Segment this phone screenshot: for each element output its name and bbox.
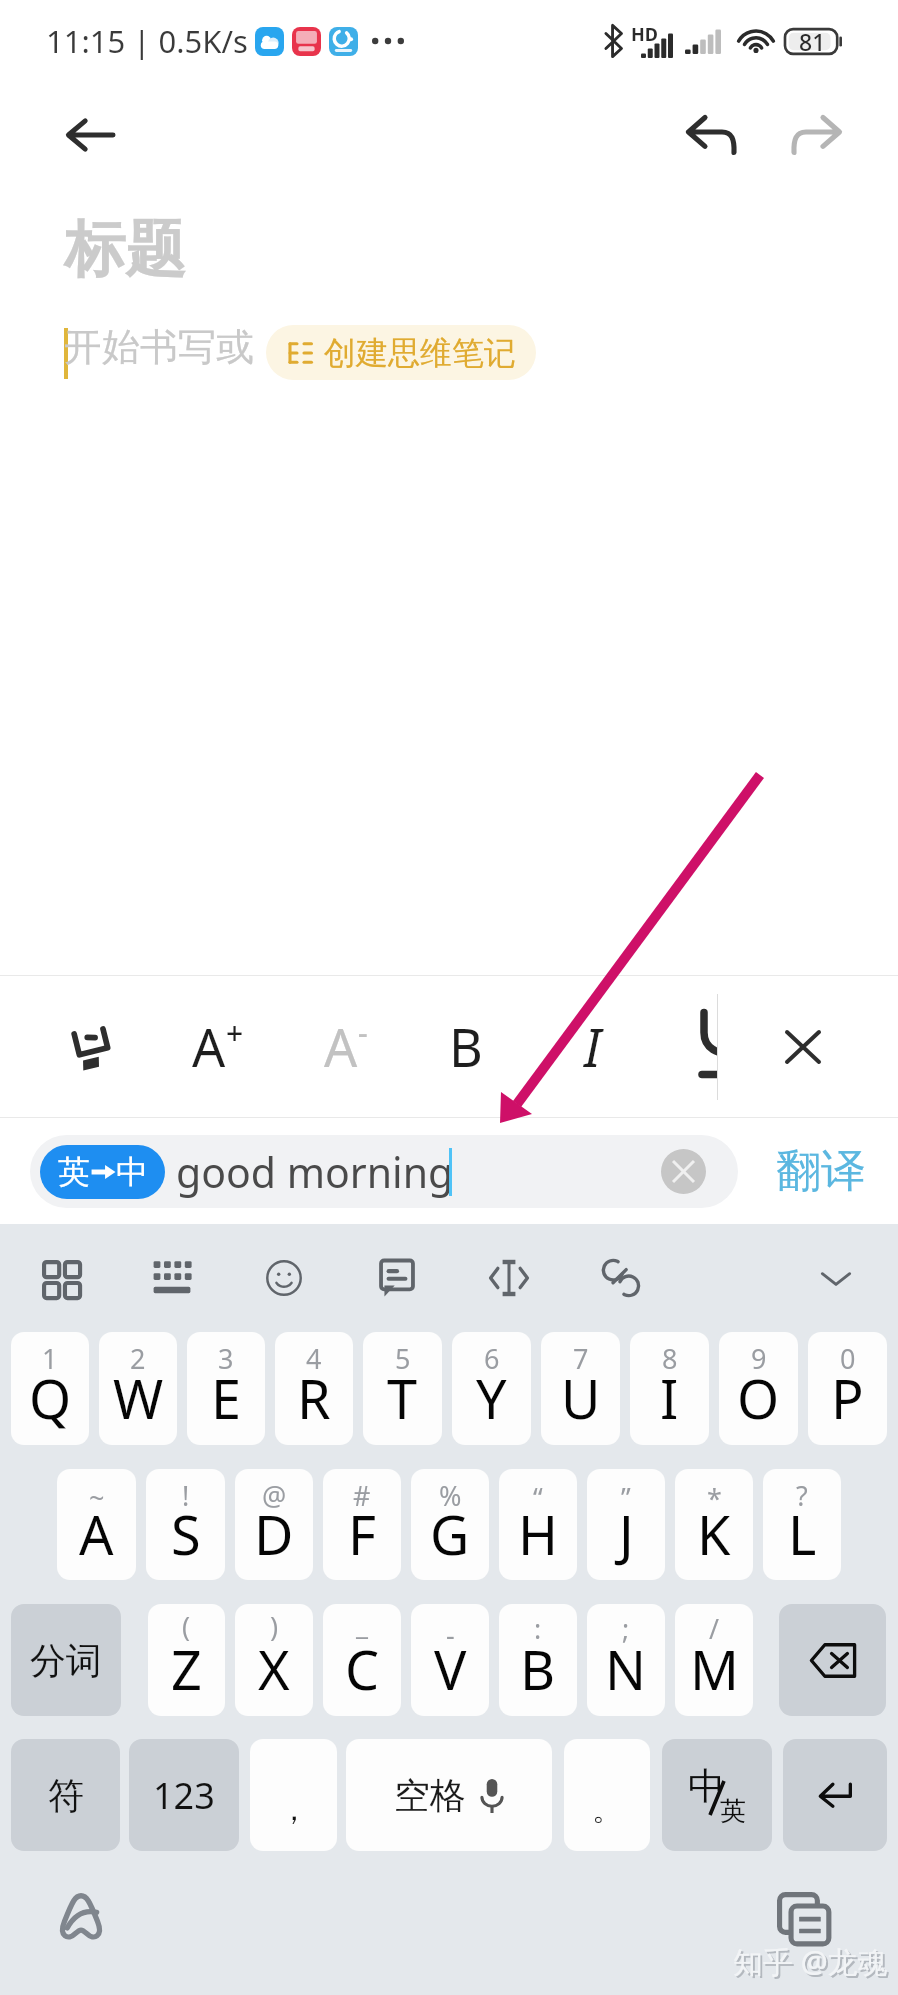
button[interactable]: 符 <box>11 1739 120 1851</box>
staticText: 5 <box>395 1340 411 1377</box>
button[interactable]: 7 <box>541 1332 620 1445</box>
button[interactable]: ? <box>763 1469 841 1580</box>
button[interactable]: 翻译 <box>764 1132 878 1210</box>
button[interactable]: 6 <box>452 1332 531 1445</box>
button[interactable]: Hide keyboard <box>798 1224 874 1332</box>
button[interactable]: Clipboard <box>583 1224 659 1332</box>
button[interactable]: Enter <box>783 1739 887 1851</box>
staticText: M <box>690 1632 739 1706</box>
button[interactable]: Switch Chinese English input <box>662 1739 772 1851</box>
button[interactable]: Move cursor <box>471 1224 547 1332</box>
button[interactable]: Close <box>758 976 848 1117</box>
button[interactable]: * <box>675 1469 753 1580</box>
staticText: 0 <box>840 1340 856 1377</box>
button[interactable]: 9 <box>719 1332 798 1445</box>
button[interactable]: Undo <box>666 90 756 180</box>
button[interactable]: More functions <box>22 1224 98 1332</box>
button[interactable]: _ <box>323 1604 401 1716</box>
button[interactable]: Italic <box>547 976 637 1117</box>
staticText: % <box>439 1477 462 1514</box>
staticText: X <box>258 1632 290 1706</box>
button[interactable]: : <box>499 1604 577 1716</box>
button[interactable]: 0 <box>808 1332 887 1445</box>
staticText: 。 <box>592 1791 622 1829</box>
button[interactable]: 创建思维笔记 <box>266 325 536 380</box>
button[interactable]: / <box>675 1604 753 1716</box>
staticText: - <box>358 1012 368 1053</box>
staticText: H <box>518 1497 559 1571</box>
button[interactable]: - <box>411 1604 489 1716</box>
staticText: good morning <box>176 1144 454 1200</box>
button[interactable]: “ <box>499 1469 577 1580</box>
staticText: C <box>345 1632 380 1706</box>
button[interactable]: % <box>411 1469 489 1580</box>
button[interactable]: 。 <box>564 1739 650 1851</box>
button[interactable]: Saved phrases <box>359 1224 435 1332</box>
staticText: ? <box>796 1477 808 1514</box>
staticText: ( <box>182 1608 191 1645</box>
staticText: W <box>113 1361 164 1435</box>
button[interactable]: @ <box>235 1469 313 1580</box>
button[interactable]: Bold <box>421 976 511 1117</box>
staticText: 3 <box>218 1340 234 1377</box>
staticText: ! <box>182 1477 190 1514</box>
staticText: T <box>387 1361 418 1435</box>
button[interactable]: Emoji <box>246 1224 322 1332</box>
button[interactable]: 1 <box>11 1332 89 1445</box>
button[interactable]: # <box>323 1469 401 1580</box>
button[interactable]: Clipboard history <box>774 1889 834 1949</box>
staticText: O <box>737 1361 780 1435</box>
staticText: 2 <box>130 1340 146 1377</box>
button[interactable]: ; <box>587 1604 665 1716</box>
staticText: 4 <box>306 1340 322 1377</box>
staticText: 分词 <box>30 1638 102 1683</box>
staticText: _ <box>356 1606 368 1643</box>
staticText: F <box>348 1497 377 1571</box>
button[interactable]: 5 <box>363 1332 442 1445</box>
staticText: ， <box>279 1791 309 1829</box>
button[interactable]: ” <box>587 1469 665 1580</box>
staticText: “ <box>533 1479 543 1516</box>
button[interactable]: Increase font size <box>173 976 263 1117</box>
staticText: Z <box>171 1632 202 1706</box>
button[interactable]: Keyboard layouts <box>134 1224 210 1332</box>
button[interactable]: 123 <box>129 1739 239 1851</box>
button[interactable]: Input method settings <box>56 1891 106 1941</box>
button[interactable]: 8 <box>630 1332 709 1445</box>
staticText: 11:15 | 0.5K/s <box>46 20 248 62</box>
button[interactable]: 空格 <box>346 1739 552 1851</box>
button[interactable]: ) <box>235 1604 313 1716</box>
button[interactable]: Redo <box>772 90 862 180</box>
staticText: 空格 <box>394 1773 466 1818</box>
staticText: D <box>254 1497 294 1571</box>
button[interactable]: Back <box>48 93 132 177</box>
button[interactable]: ! <box>146 1469 225 1580</box>
button[interactable]: Clear text <box>661 1149 706 1194</box>
button[interactable]: ， <box>250 1739 337 1851</box>
button[interactable]: Backspace <box>779 1604 886 1716</box>
staticText: 英 <box>720 1795 746 1828</box>
staticText: 开始书写或 <box>64 323 254 371</box>
button[interactable]: ( <box>148 1604 225 1716</box>
staticText: K <box>697 1497 731 1571</box>
staticText: B <box>520 1632 556 1706</box>
staticText: A <box>192 1011 226 1082</box>
staticText: 中 <box>116 1152 148 1192</box>
staticText: P <box>831 1361 864 1435</box>
staticText: U <box>561 1361 601 1435</box>
staticText: 英 <box>58 1152 90 1192</box>
button[interactable]: Highlight <box>48 976 138 1117</box>
staticText: 123 <box>153 1771 215 1820</box>
button[interactable]: 2 <box>99 1332 177 1445</box>
button[interactable]: ~ <box>57 1469 136 1580</box>
button[interactable]: 4 <box>275 1332 353 1445</box>
staticText: 81 <box>799 26 826 57</box>
staticText: ~ <box>89 1479 105 1516</box>
button[interactable]: 分词 <box>11 1604 121 1716</box>
button[interactable]: 3 <box>187 1332 265 1445</box>
staticText: 标题 <box>64 211 186 288</box>
button[interactable]: 英 <box>30 1135 738 1208</box>
staticText: 翻译 <box>776 1143 866 1200</box>
button[interactable]: Decrease font size <box>301 976 391 1117</box>
button[interactable]: Underline <box>663 976 717 1117</box>
